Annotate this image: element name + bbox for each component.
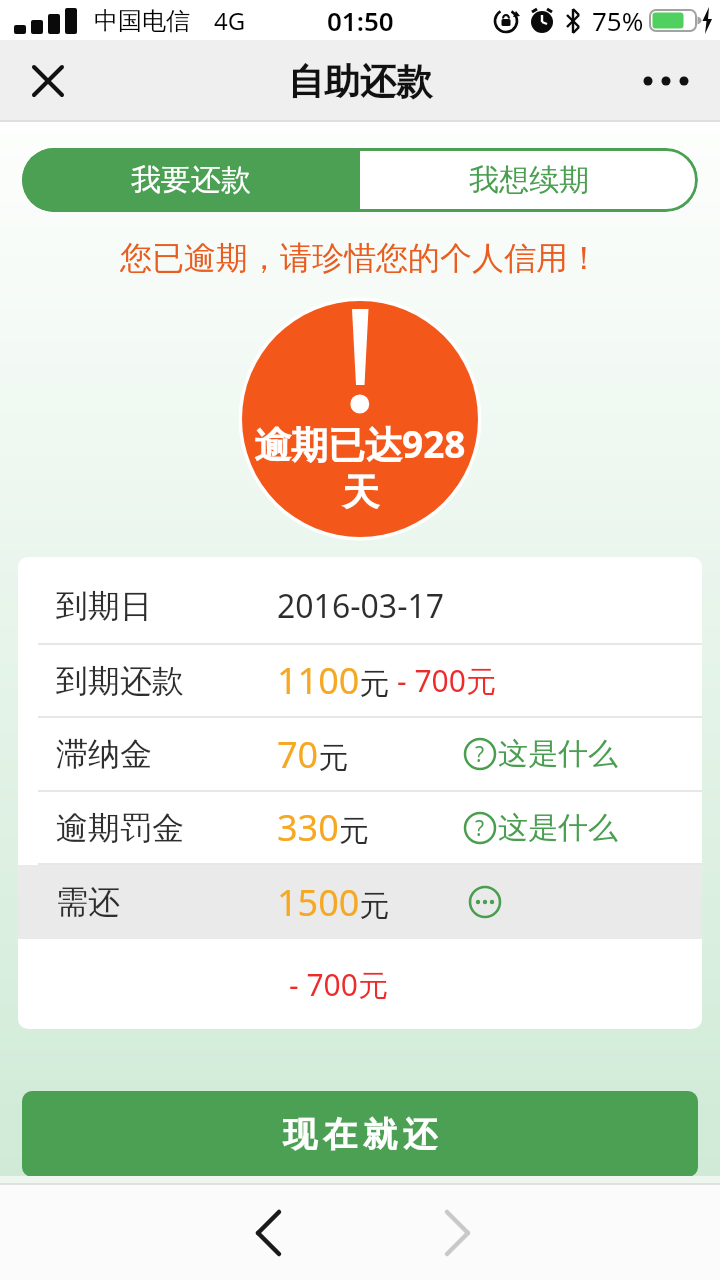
staticText: 这是什么: [498, 809, 618, 847]
staticText: 逾期已达928: [254, 418, 466, 469]
staticText: 1500元: [277, 878, 390, 927]
button[interactable]: 需还: [18, 865, 702, 939]
staticText: 2016-03-17: [277, 584, 445, 628]
staticText: 需还: [56, 882, 120, 922]
staticText: ?: [475, 814, 485, 843]
staticText: 现在就还: [280, 1113, 440, 1156]
button[interactable]: 逾期罚金: [18, 792, 702, 863]
button[interactable]: [638, 53, 694, 109]
button[interactable]: 滞纳金: [18, 718, 702, 790]
staticText: 这是什么: [498, 735, 618, 773]
button[interactable]: [428, 1203, 488, 1263]
staticText: 到期还款: [56, 661, 184, 701]
staticText: - 700元: [397, 660, 496, 701]
button[interactable]: 到期日: [18, 569, 702, 643]
button[interactable]: [238, 1203, 298, 1263]
button[interactable]: 我想续期: [360, 148, 698, 212]
button[interactable]: 现在就还: [22, 1091, 698, 1177]
staticText: 75%: [592, 3, 644, 38]
button[interactable]: 我要还款: [22, 148, 360, 212]
staticText: 中国电信: [94, 6, 190, 36]
button[interactable]: - 700元: [18, 939, 702, 1029]
staticText: 逾期罚金: [56, 808, 184, 848]
staticText: - 700元: [289, 964, 388, 1005]
staticText: 4G: [214, 4, 246, 37]
button[interactable]: [20, 53, 76, 109]
staticText: 您已逾期，请珍惜您的个人信用！: [0, 238, 720, 278]
staticText: 我想续期: [469, 161, 589, 199]
staticText: 到期日: [56, 586, 152, 626]
staticText: 70元: [277, 730, 349, 779]
staticText: ?: [475, 740, 485, 769]
staticText: 330元: [277, 803, 369, 852]
staticText: 1100元: [277, 656, 390, 705]
button[interactable]: ?: [464, 809, 618, 847]
staticText: 滞纳金: [56, 734, 152, 774]
staticText: 天: [342, 469, 379, 516]
staticText: 我要还款: [131, 161, 251, 199]
staticText: 自助还款: [288, 59, 432, 104]
button[interactable]: 到期还款: [18, 645, 702, 716]
staticText: 01:50: [327, 3, 394, 38]
button[interactable]: ?: [464, 735, 618, 773]
